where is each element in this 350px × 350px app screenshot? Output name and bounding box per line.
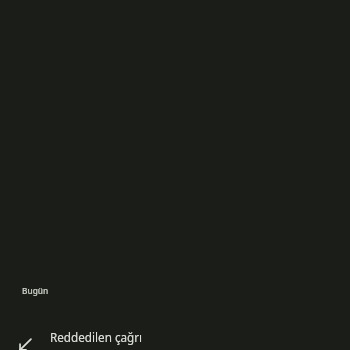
staticText: Reddedilen çağrı <box>50 329 143 345</box>
staticText: Bugün <box>22 285 49 296</box>
button[interactable]: Rejected call <box>0 329 350 350</box>
other: Rejected call <box>19 338 32 350</box>
